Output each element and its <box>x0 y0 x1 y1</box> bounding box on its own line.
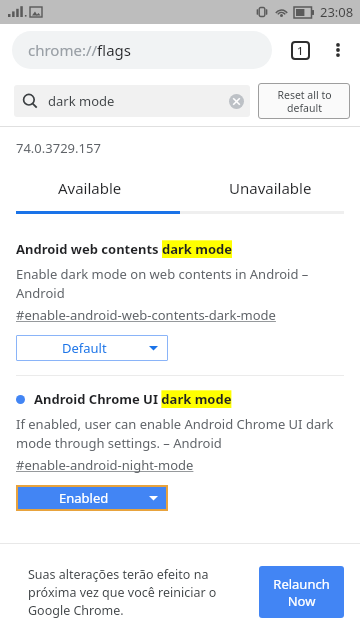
button[interactable]: Tabs: 1 open <box>280 30 320 70</box>
button[interactable]: Reset all to default <box>258 83 350 119</box>
button[interactable]: Enabled <box>16 485 168 511</box>
staticText: Available <box>58 178 122 198</box>
staticText: chrome://flags <box>28 40 131 60</box>
staticText: Android web contents dark mode <box>16 240 233 258</box>
staticText: Enable dark mode on web contents in Andr… <box>16 265 309 302</box>
button[interactable]: chrome://flags <box>12 31 272 69</box>
staticText: 1 <box>297 43 304 58</box>
button[interactable]: Clear search <box>222 87 250 115</box>
staticText: Relaunch Now <box>273 575 330 610</box>
button[interactable]: Unavailable <box>180 171 360 205</box>
button[interactable]: Default <box>16 335 168 361</box>
button[interactable]: Relaunch Now <box>259 566 344 618</box>
staticText: If enabled, user can enable Android Chro… <box>16 415 334 452</box>
staticText: #enable-android-web-contents-dark-mode <box>16 306 276 324</box>
staticText: Reset all to default <box>277 88 332 115</box>
staticText: Unavailable <box>229 178 312 198</box>
staticText: Android Chrome UI dark mode <box>34 390 232 408</box>
staticText: dark mode <box>48 92 222 110</box>
button[interactable]: Available <box>0 171 180 205</box>
button[interactable]: More options <box>320 30 356 70</box>
staticText: Suas alterações terão efeito na próxima … <box>28 566 259 619</box>
staticText: Default <box>62 339 107 357</box>
staticText: #enable-android-night-mode <box>16 456 194 474</box>
button[interactable]: dark mode <box>14 85 250 117</box>
staticText: 23:08 <box>320 3 354 21</box>
staticText: Enabled <box>59 489 109 507</box>
staticText: 74.0.3729.157 <box>16 139 101 157</box>
